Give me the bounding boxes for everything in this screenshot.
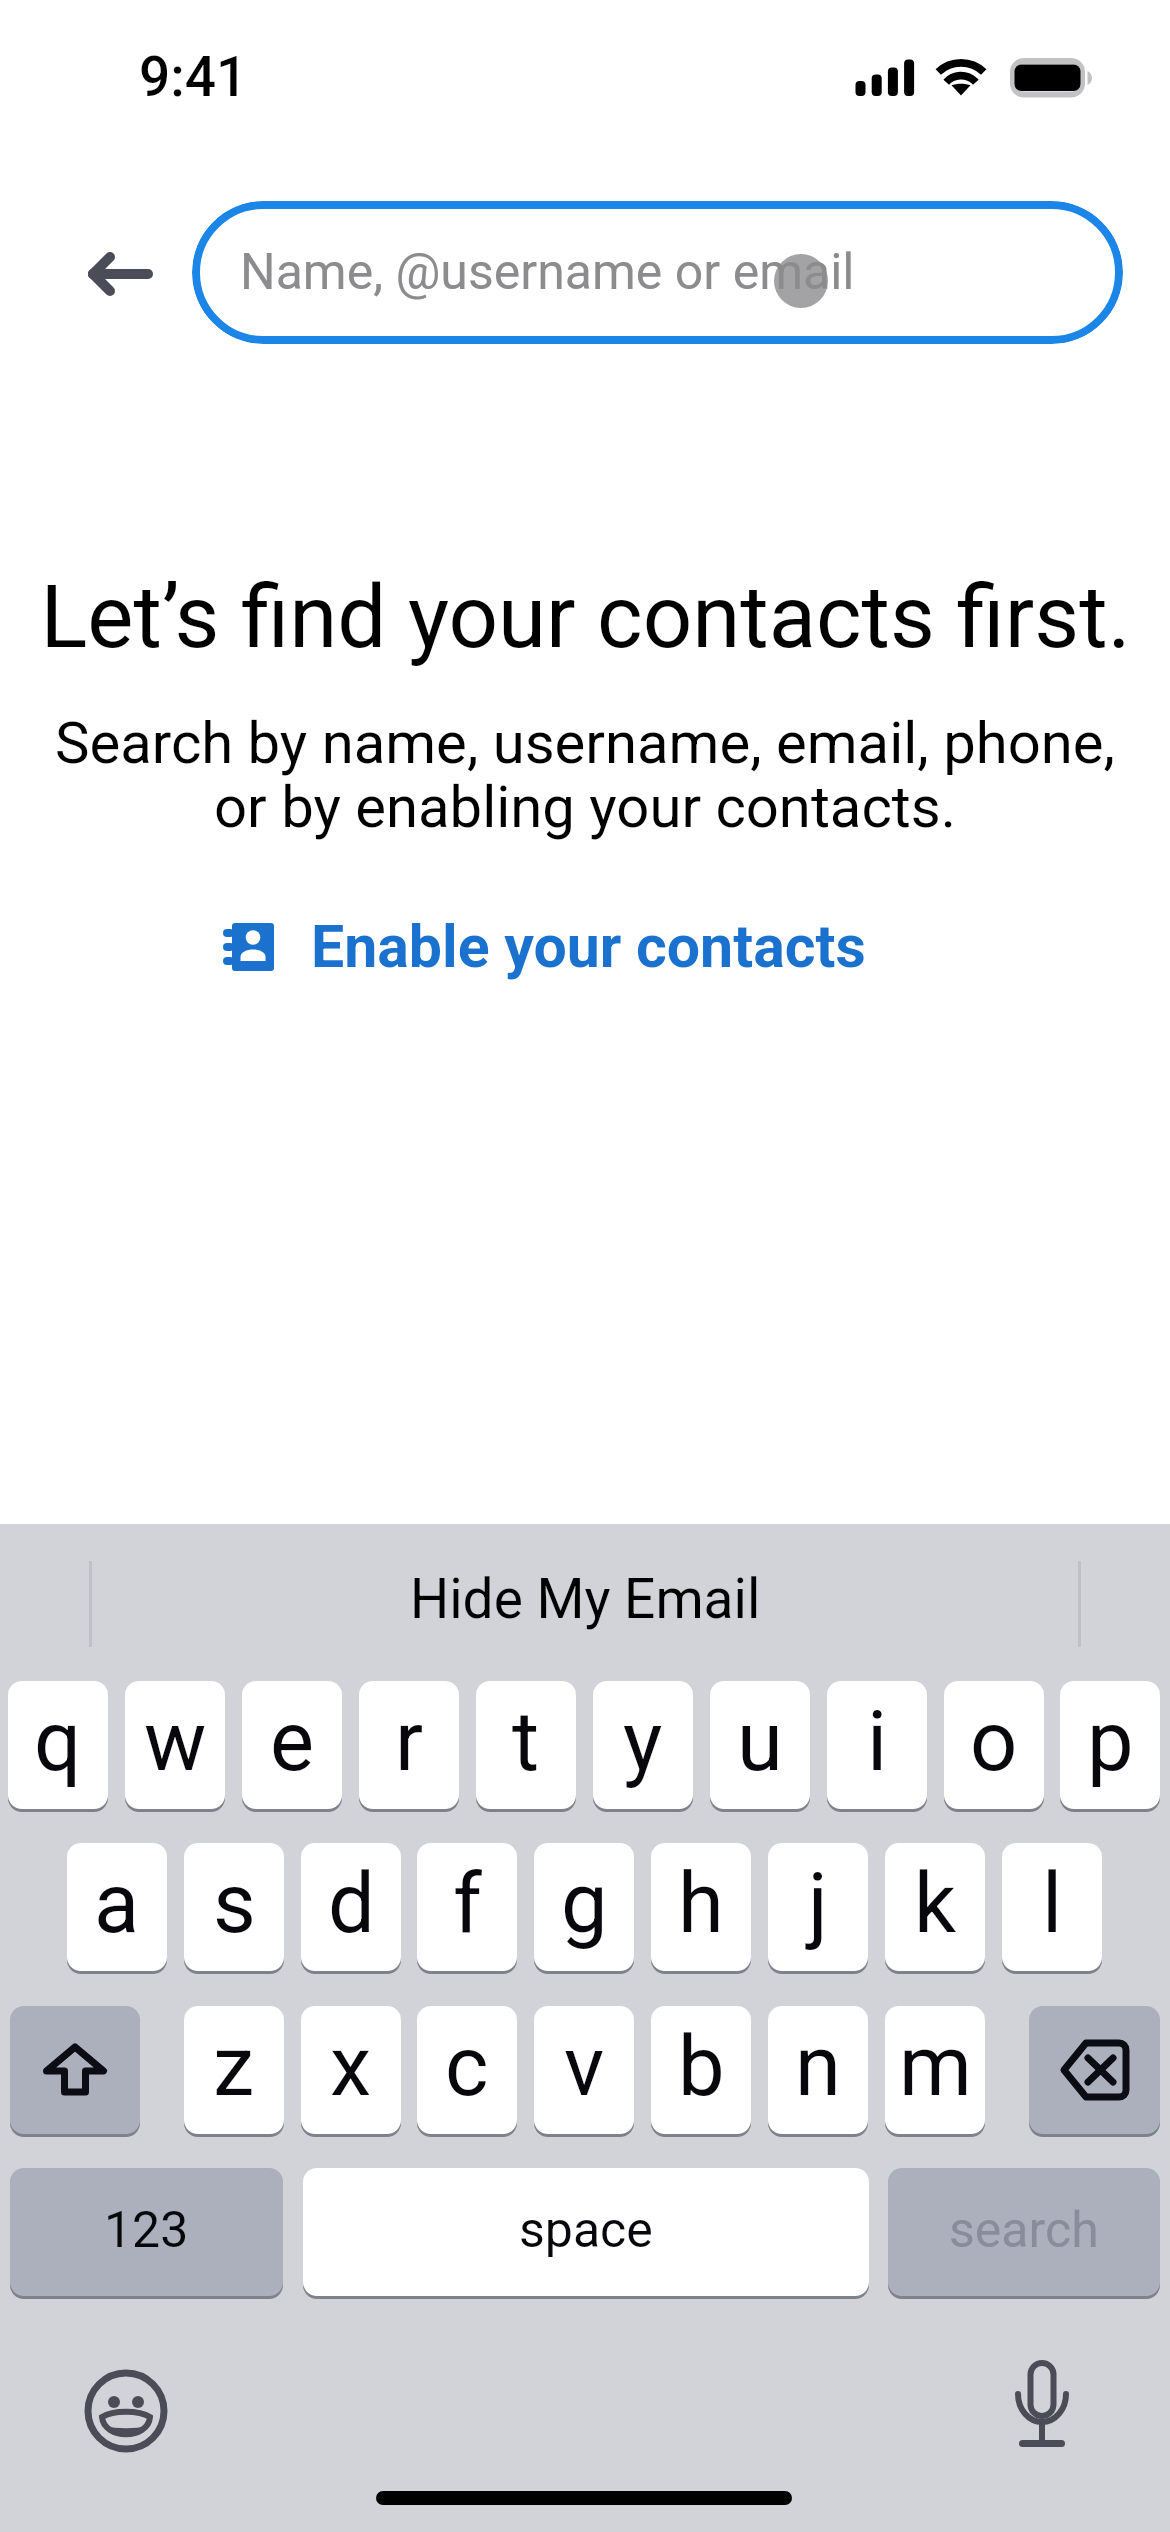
button[interactable]: Backspace [1029,2006,1160,2134]
button[interactable]: Emoji keyboard [84,2369,168,2453]
staticText: n [795,2018,841,2115]
button[interactable]: t [476,1681,576,1809]
button[interactable]: search [888,2168,1160,2296]
staticText: f [453,1855,482,1952]
staticText: l [1042,1855,1063,1952]
button[interactable]: Hide My Email [110,1554,1060,1644]
staticText: m [899,2018,972,2115]
button[interactable]: p [1060,1681,1160,1809]
button[interactable]: d [301,1843,401,1971]
button[interactable]: Dictation [1000,2364,1084,2448]
button[interactable]: m [885,2006,985,2134]
staticText: Enable your contacts [311,912,866,981]
staticText: space [519,2201,653,2260]
staticText: u [737,1693,783,1790]
staticText: w [144,1693,207,1790]
button[interactable]: w [125,1681,225,1809]
staticText: 9:41 [139,45,248,109]
button[interactable]: e [242,1681,342,1809]
staticText: Let’s find your contacts first. [40,566,1131,668]
staticText: c [445,2018,489,2115]
button[interactable]: k [885,1843,985,1971]
button[interactable]: x [301,2006,401,2134]
staticText: 123 [104,2201,189,2260]
button[interactable]: h [651,1843,751,1971]
staticText: x [330,2018,372,2115]
button[interactable]: n [768,2006,868,2134]
staticText: t [512,1693,540,1790]
staticText: search [949,2201,1099,2260]
staticText: z [213,2018,255,2115]
button[interactable]: f [417,1843,517,1971]
button[interactable]: Enable your contacts [223,912,866,981]
button[interactable]: r [359,1681,459,1809]
staticText: r [395,1693,424,1790]
staticText: Search by name, username, email, phone, … [55,709,1115,842]
button[interactable]: c [417,2006,517,2134]
button[interactable]: s [184,1843,284,1971]
staticText: i [867,1693,888,1790]
button[interactable]: i [827,1681,927,1809]
button[interactable]: v [534,2006,634,2134]
button[interactable]: j [768,1843,868,1971]
staticText: Hide My Email [410,1567,761,1631]
button[interactable]: a [67,1843,167,1971]
button[interactable]: z [184,2006,284,2134]
button[interactable]: u [710,1681,810,1809]
staticText: q [34,1693,82,1790]
button[interactable]: Shift [10,2006,140,2134]
button[interactable]: l [1002,1843,1102,1971]
button[interactable]: q [8,1681,108,1809]
button[interactable]: o [944,1681,1044,1809]
staticText: j [808,1855,828,1952]
staticText: g [561,1855,608,1952]
staticText: p [1087,1693,1134,1790]
staticText: y [623,1693,663,1790]
button[interactable]: g [534,1843,634,1971]
staticText: e [270,1693,315,1790]
staticText: o [970,1693,1018,1790]
staticText: h [678,1855,724,1952]
button[interactable]: b [651,2006,751,2134]
staticText: d [328,1855,375,1952]
staticText: k [914,1855,957,1952]
button[interactable]: Back [71,236,156,321]
button[interactable]: space [303,2168,869,2296]
staticText: Name, @username or email [240,243,855,302]
staticText: s [213,1855,256,1952]
button[interactable]: Name, @username or email [192,201,1123,344]
button[interactable]: y [593,1681,693,1809]
staticText: v [564,2018,605,2115]
button[interactable]: 123 [10,2168,283,2296]
staticText: b [678,2018,725,2115]
staticText: a [94,1855,140,1952]
